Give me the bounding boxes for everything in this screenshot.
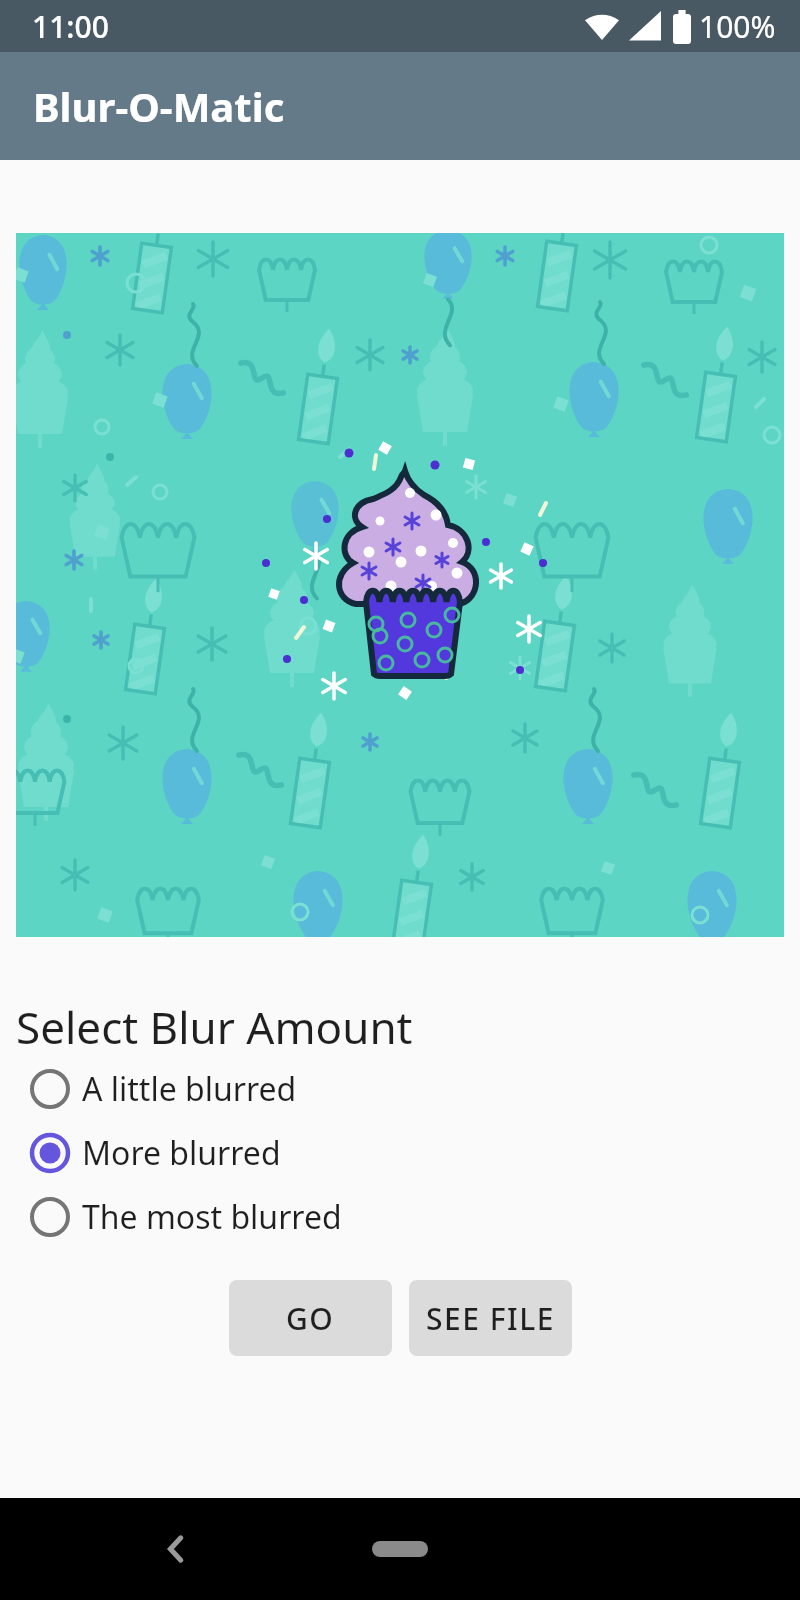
staticText: 100% [699, 6, 776, 47]
staticText: More blurred [82, 1131, 281, 1175]
staticText: SEE FILE [426, 1298, 555, 1339]
button[interactable]: The most blurred [0, 1185, 800, 1249]
staticText: 11:00 [32, 6, 109, 47]
button[interactable] [156, 1529, 196, 1569]
button[interactable]: SEE FILE [409, 1280, 572, 1356]
button[interactable]: More blurred [0, 1121, 800, 1185]
staticText: A little blurred [82, 1067, 297, 1111]
button[interactable]: GO [229, 1280, 392, 1356]
staticText: The most blurred [82, 1195, 342, 1239]
staticText: Blur-O-Matic [33, 79, 285, 133]
button[interactable] [372, 1541, 428, 1557]
button[interactable]: A little blurred [0, 1057, 800, 1121]
staticText: Select Blur Amount [16, 997, 413, 1057]
staticText: GO [286, 1298, 335, 1339]
